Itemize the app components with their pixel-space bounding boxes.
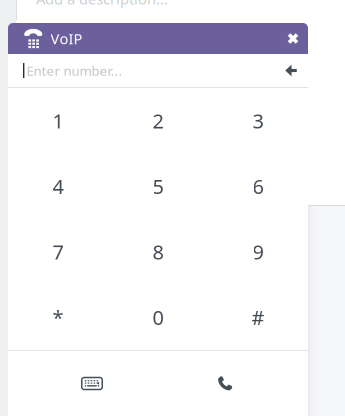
staticText: 0 — [152, 304, 163, 331]
button[interactable]: 8 — [108, 219, 208, 284]
staticText: Add a description... — [36, 0, 168, 8]
staticText: 4 — [52, 173, 63, 200]
staticText: 7 — [52, 238, 63, 265]
button[interactable]: Keyboard — [25, 351, 159, 416]
staticText: 6 — [252, 173, 263, 200]
button[interactable]: 6 — [208, 153, 308, 219]
staticText: Enter number... — [26, 62, 122, 79]
button[interactable]: Call — [159, 351, 291, 416]
button[interactable]: * — [8, 284, 108, 350]
button[interactable]: 2 — [108, 88, 208, 153]
button[interactable]: 1 — [8, 88, 108, 153]
button[interactable]: Close — [285, 30, 301, 46]
staticText: 3 — [252, 107, 263, 134]
button[interactable]: 5 — [108, 153, 208, 219]
staticText: 9 — [252, 238, 263, 265]
button[interactable]: 4 — [8, 153, 108, 219]
button[interactable]: # — [208, 284, 308, 350]
staticText: * — [52, 304, 63, 331]
staticText: # — [251, 304, 264, 331]
staticText: VoIP — [50, 29, 82, 48]
staticText: 1 — [52, 107, 63, 134]
button[interactable]: 0 — [108, 284, 208, 350]
button[interactable]: 9 — [208, 219, 308, 284]
button[interactable]: 7 — [8, 219, 108, 284]
staticText: 8 — [152, 238, 163, 265]
button[interactable]: 3 — [208, 88, 308, 153]
button[interactable]: Backspace — [282, 61, 300, 79]
staticText: 2 — [152, 107, 163, 134]
staticText: 5 — [152, 173, 163, 200]
